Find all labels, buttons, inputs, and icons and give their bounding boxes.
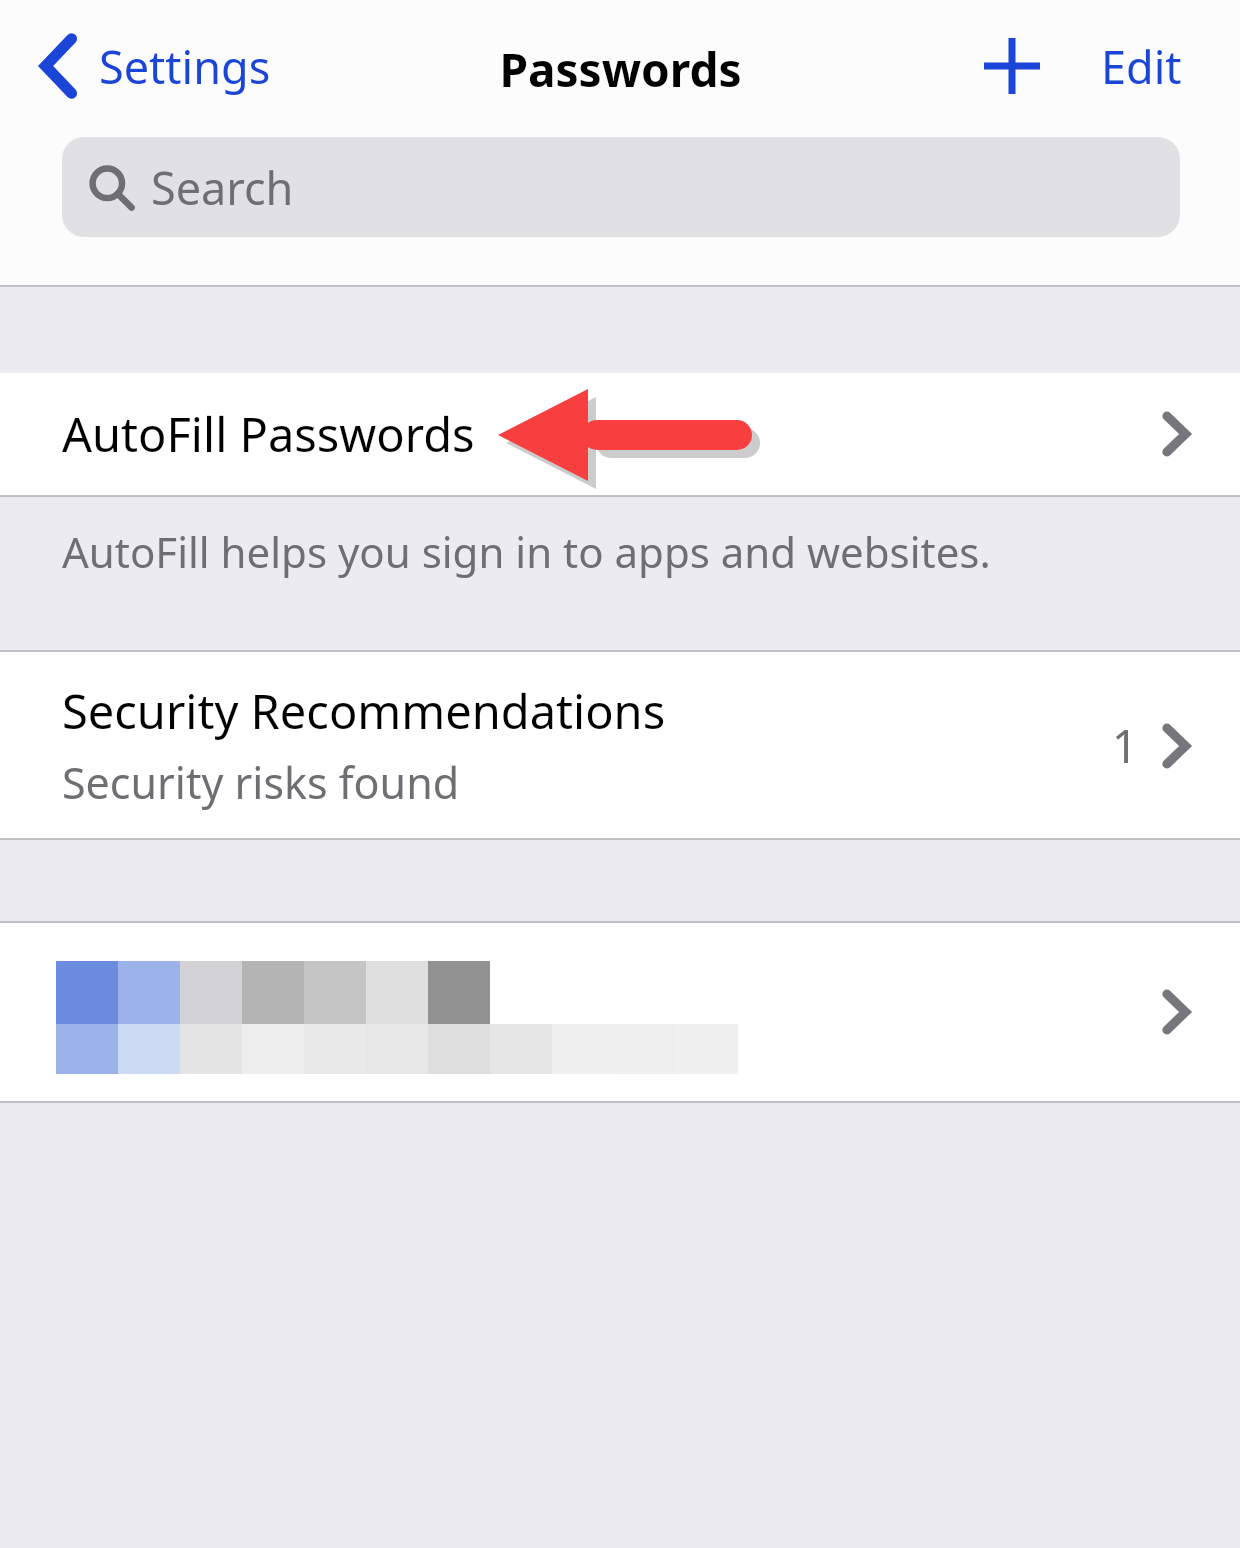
staticText: Security Recommendations xyxy=(62,679,666,743)
button[interactable]: Saved password entry xyxy=(0,923,1240,1101)
staticText: Passwords xyxy=(499,38,742,101)
staticText: Security risks found xyxy=(62,753,460,812)
button[interactable]: Add password xyxy=(964,18,1060,114)
staticText: Edit xyxy=(1101,36,1182,97)
button[interactable]: Settings xyxy=(30,18,283,114)
button[interactable]: Search xyxy=(62,137,1180,237)
button[interactable]: Security Recommendations xyxy=(0,652,1240,838)
staticText: 1 xyxy=(1112,715,1138,776)
staticText: Search xyxy=(151,157,294,218)
staticText: AutoFill Passwords xyxy=(62,402,475,466)
staticText: Settings xyxy=(99,36,271,97)
button[interactable]: AutoFill Passwords xyxy=(0,373,1240,495)
staticText: AutoFill helps you sign in to apps and w… xyxy=(62,523,991,580)
button[interactable]: Edit xyxy=(1081,18,1240,114)
